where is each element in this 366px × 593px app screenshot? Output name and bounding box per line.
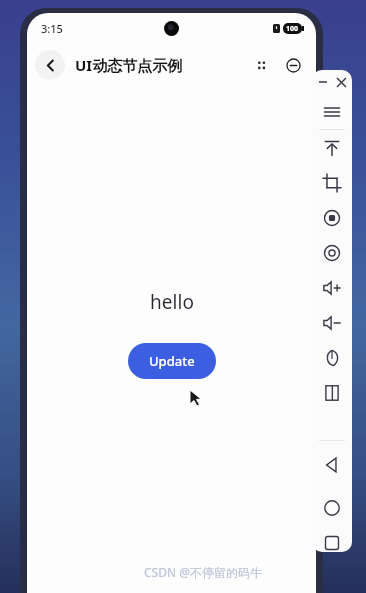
staticText: 100 xyxy=(286,24,299,34)
button[interactable]: Minimize window xyxy=(315,74,331,90)
button[interactable]: Menu xyxy=(312,94,352,129)
staticText: 3:15 xyxy=(41,21,63,36)
button[interactable]: Minimize xyxy=(278,50,308,80)
button[interactable]: Volume up xyxy=(312,270,352,305)
staticText: Update xyxy=(149,352,195,370)
button[interactable]: Recents xyxy=(312,533,352,552)
button[interactable]: Back xyxy=(35,50,65,80)
staticText: hello xyxy=(150,289,194,315)
button[interactable]: Record xyxy=(312,200,352,235)
button[interactable]: Close window xyxy=(333,74,349,90)
button[interactable]: Home xyxy=(312,490,352,525)
button[interactable]: Back xyxy=(312,447,352,482)
staticText: UI动态节点示例 xyxy=(75,55,183,75)
button[interactable]: More options xyxy=(246,50,276,80)
button[interactable]: Fold xyxy=(312,375,352,410)
button[interactable]: Crop xyxy=(312,165,352,200)
button[interactable]: Screenshot xyxy=(312,235,352,270)
button[interactable]: Volume down xyxy=(312,305,352,340)
button[interactable]: Update xyxy=(128,343,216,379)
staticText: CSDN @不停留的码牛 xyxy=(144,564,262,580)
button[interactable]: Rotate xyxy=(312,340,352,375)
button[interactable]: Upload xyxy=(312,130,352,165)
